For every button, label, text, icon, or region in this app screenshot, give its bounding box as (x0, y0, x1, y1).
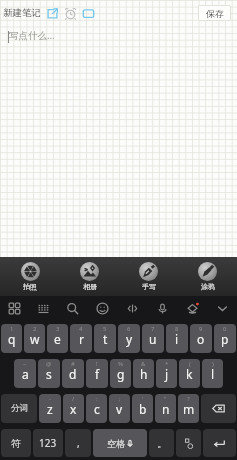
button[interactable]: 空格 (93, 429, 147, 457)
button[interactable]: 保存 (198, 5, 231, 21)
button[interactable]: - (39, 394, 61, 423)
button[interactable]: 5 (94, 324, 116, 353)
staticText: 3 (56, 325, 60, 333)
button[interactable]: 3 (47, 324, 68, 353)
button[interactable]: Hide keyboard (207, 296, 237, 321)
staticText: 123 (39, 436, 57, 450)
staticText: i (175, 331, 179, 347)
staticText: & (141, 360, 146, 368)
button[interactable]: 。 (149, 429, 174, 457)
button[interactable]: " (155, 394, 176, 423)
staticText: 空格 (107, 438, 125, 449)
button[interactable]: 分词 (1, 394, 37, 423)
button[interactable]: Set reminder (64, 7, 77, 20)
button[interactable]: Apps (0, 296, 29, 321)
button[interactable]: Note background (82, 7, 95, 20)
staticText: : (96, 395, 98, 403)
button[interactable]: ~ (14, 359, 36, 388)
button[interactable]: @ (38, 359, 60, 388)
button[interactable]: 2 (24, 324, 45, 353)
staticText: / (72, 395, 75, 403)
button[interactable]: 1 (1, 324, 22, 353)
button[interactable]: 4 (70, 324, 92, 353)
staticText: ! (96, 360, 98, 368)
button[interactable]: 符 (1, 429, 31, 457)
button[interactable]: 涂鸦 (178, 257, 237, 296)
button[interactable]: Enter (203, 429, 236, 457)
staticText: n (162, 401, 170, 417)
staticText: 拍照 (23, 282, 37, 291)
button[interactable]: ) (202, 359, 223, 388)
staticText: f (95, 366, 100, 382)
button[interactable]: & (133, 359, 154, 388)
button[interactable]: ! (86, 359, 108, 388)
staticText: w (30, 331, 40, 347)
staticText: l (211, 366, 215, 382)
staticText: ? (187, 395, 190, 403)
staticText: 4 (79, 325, 83, 333)
staticText: % (118, 360, 123, 368)
staticText: a (22, 366, 29, 382)
staticText: 0 (223, 325, 227, 333)
button[interactable]: , (65, 429, 91, 457)
button[interactable]: 8 (166, 324, 188, 353)
staticText: 手写 (142, 282, 156, 291)
button[interactable]: % (110, 359, 131, 388)
staticText: s (46, 366, 52, 382)
button[interactable]: Share note (46, 7, 59, 20)
staticText: 6 (127, 325, 131, 333)
staticText: c (94, 401, 100, 417)
staticText: 相册 (83, 282, 97, 291)
button[interactable]: 9 (190, 324, 212, 353)
staticText: 新建笔记 (3, 7, 41, 19)
staticText: v (116, 401, 123, 417)
button[interactable]: 6 (118, 324, 140, 353)
staticText: ' (142, 395, 144, 403)
button[interactable]: Keyboard layout (29, 296, 58, 321)
staticText: u (149, 331, 157, 347)
button[interactable]: 相册 (60, 257, 119, 296)
button[interactable]: Stickers (176, 429, 201, 457)
staticText: 7 (151, 325, 155, 333)
staticText: k (186, 366, 193, 382)
button[interactable]: 拍照 (0, 257, 60, 296)
staticText: j (165, 366, 169, 382)
button[interactable]: ( (179, 359, 200, 388)
button[interactable]: / (63, 394, 84, 423)
button[interactable]: Clipboard (117, 296, 147, 321)
staticText: z (47, 401, 53, 417)
button[interactable]: 0 (214, 324, 236, 353)
button[interactable]: ? (178, 394, 199, 423)
button[interactable]: : (86, 394, 107, 423)
button[interactable]: 123 (33, 429, 63, 457)
button[interactable]: Voice input (147, 296, 177, 321)
button[interactable]: Theme (177, 296, 207, 321)
staticText: * (165, 360, 169, 368)
staticText: e (54, 331, 61, 347)
button[interactable]: Backspace (201, 394, 236, 423)
staticText: p (221, 331, 229, 347)
staticText: " (164, 395, 167, 403)
button[interactable]: Search (58, 296, 87, 321)
staticText: # (71, 360, 75, 368)
staticText: @ (46, 360, 52, 368)
staticText: ~ (23, 360, 27, 368)
staticText: q (8, 331, 16, 347)
staticText: b (139, 401, 147, 417)
button[interactable]: * (156, 359, 177, 388)
staticText: 。 (157, 437, 167, 450)
staticText: y (126, 331, 133, 347)
button[interactable]: ; (109, 394, 130, 423)
staticText: , (77, 436, 80, 450)
staticText: 保存 (206, 8, 224, 19)
button[interactable]: # (62, 359, 84, 388)
button[interactable]: 手写 (119, 257, 178, 296)
button[interactable]: ' (132, 394, 153, 423)
staticText: t (103, 331, 108, 347)
staticText: 2 (33, 325, 37, 333)
staticText: 1 (10, 325, 14, 333)
staticText: 写点什么... (9, 29, 55, 42)
staticText: h (140, 366, 148, 382)
button[interactable]: 7 (142, 324, 164, 353)
button[interactable]: Emoji (87, 296, 117, 321)
